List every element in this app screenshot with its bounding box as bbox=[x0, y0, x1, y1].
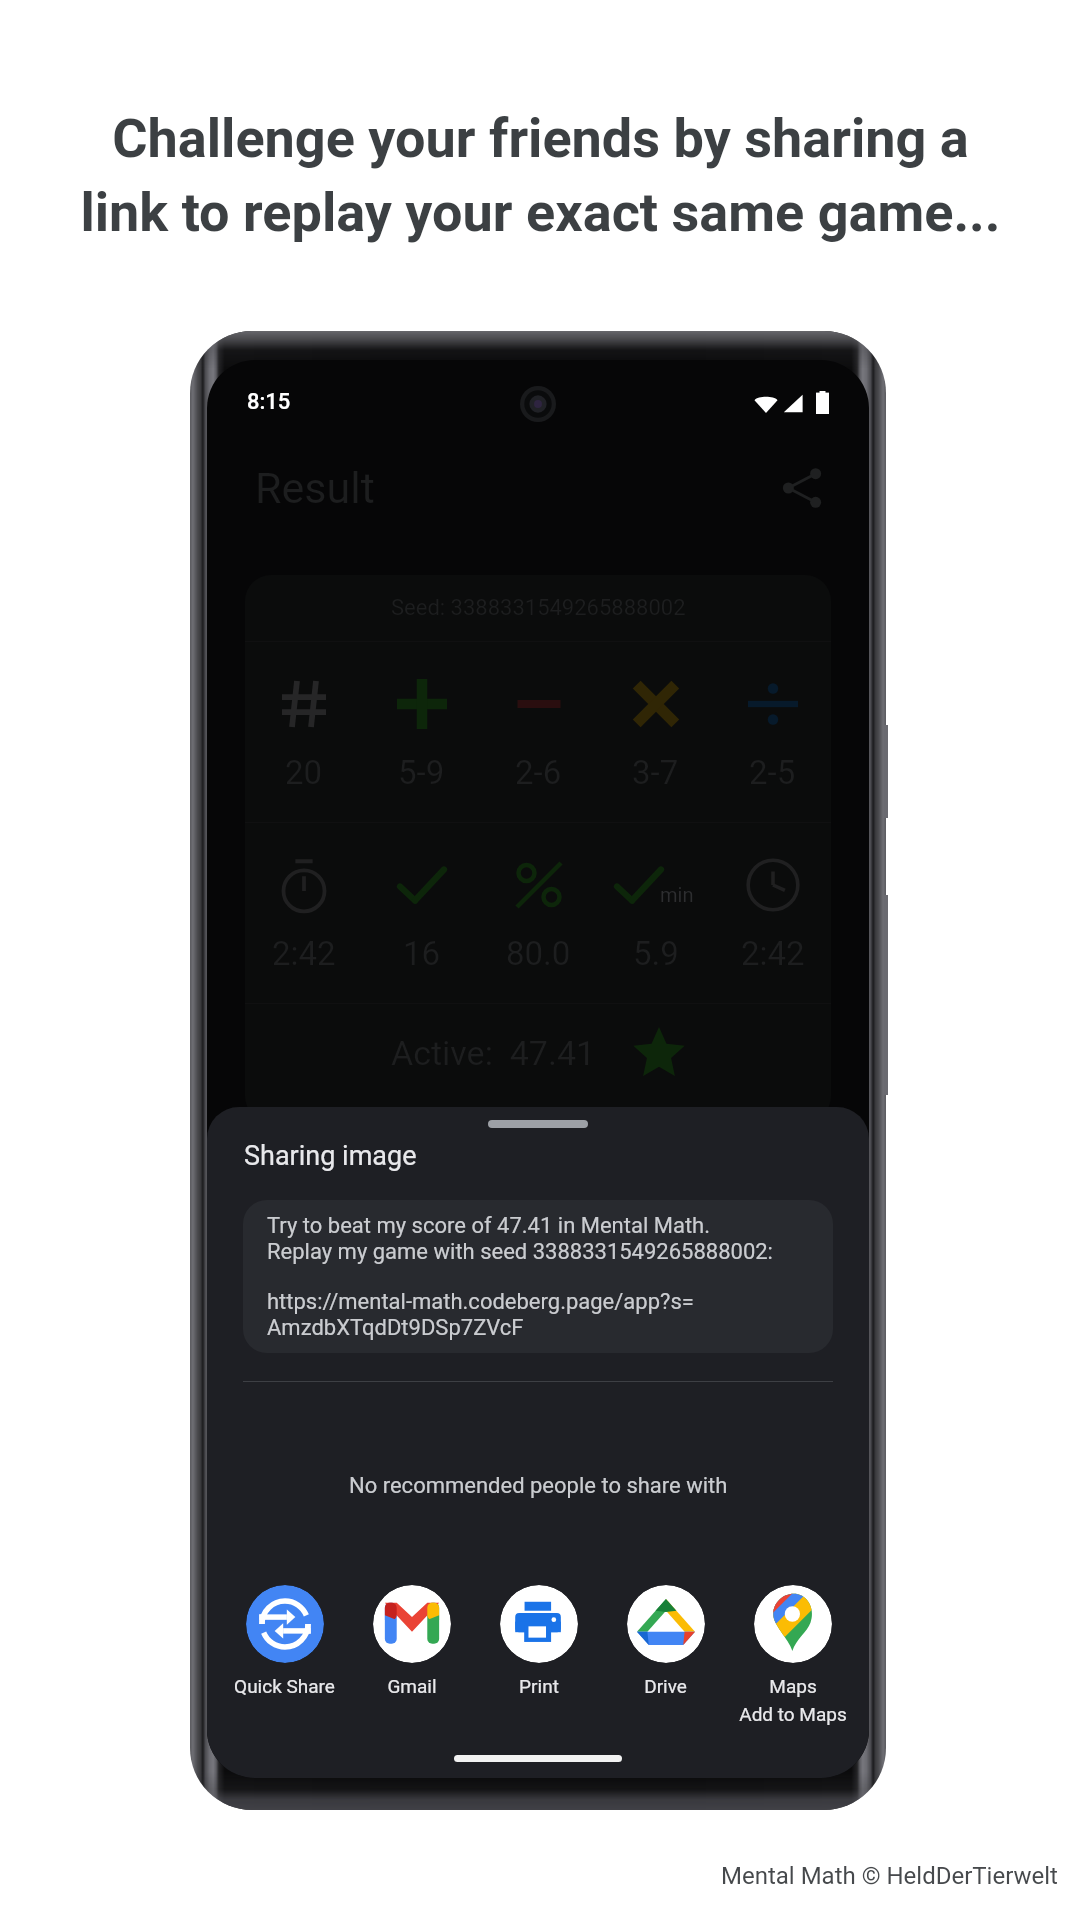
staticText: Challenge your friends by sharing a bbox=[112, 107, 969, 170]
staticText: 3-7 bbox=[632, 753, 679, 792]
staticText: Drive bbox=[644, 1675, 687, 1697]
staticText: AmzdbXTqdDt9DSp7ZVcF bbox=[267, 1315, 524, 1341]
button[interactable]: Drive bbox=[602, 1585, 729, 1697]
staticText: 16 bbox=[403, 934, 441, 973]
staticText: 5-9 bbox=[398, 753, 445, 792]
button[interactable]: Share bbox=[770, 456, 834, 520]
staticText: No recommended people to share with bbox=[349, 1473, 728, 1499]
staticText: Try to beat my score of 47.41 in Mental … bbox=[267, 1213, 711, 1239]
staticText: Seed: 3388331549265888002 bbox=[391, 595, 686, 621]
staticText: link to replay your exact same game... bbox=[80, 181, 1001, 244]
button[interactable]: Print bbox=[475, 1585, 602, 1697]
button[interactable]: Quick Share bbox=[221, 1585, 348, 1697]
staticText: min bbox=[660, 883, 694, 906]
staticText: Replay my game with seed 338833154926588… bbox=[267, 1239, 773, 1265]
staticText: Active: 47.41 bbox=[391, 1033, 596, 1073]
staticText: Result bbox=[255, 463, 375, 513]
staticText: Gmail bbox=[387, 1675, 437, 1697]
staticText: 5.9 bbox=[633, 934, 679, 973]
staticText: Sharing image bbox=[244, 1140, 417, 1172]
staticText: 2-5 bbox=[749, 753, 796, 792]
staticText: 2-6 bbox=[515, 753, 562, 792]
button[interactable]: Maps bbox=[729, 1585, 856, 1725]
staticText: Maps bbox=[769, 1675, 817, 1697]
staticText: 80.0 bbox=[506, 934, 571, 973]
staticText: 2:42 bbox=[741, 934, 805, 973]
staticText: Add to Maps bbox=[739, 1703, 847, 1725]
staticText: Mental Math © HeldDerTierwelt bbox=[721, 1862, 1058, 1890]
staticText: Quick Share bbox=[234, 1675, 335, 1697]
staticText: https://mental-math.codeberg.page/app?s= bbox=[267, 1289, 694, 1315]
staticText: 8:15 bbox=[247, 389, 291, 415]
staticText: Print bbox=[519, 1675, 559, 1697]
staticText: 2:42 bbox=[272, 934, 336, 973]
staticText: 20 bbox=[285, 753, 323, 792]
button[interactable]: Gmail bbox=[348, 1585, 475, 1697]
